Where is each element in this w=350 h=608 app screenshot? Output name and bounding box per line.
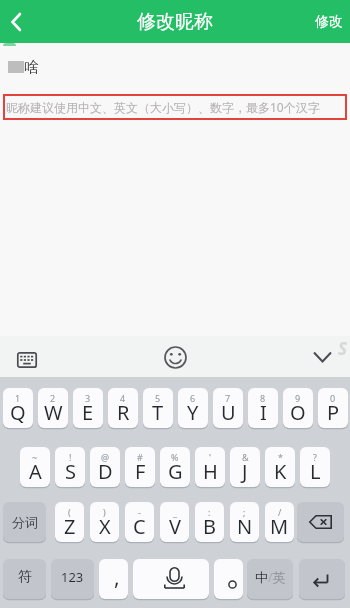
button[interactable]: !	[55, 447, 85, 487]
staticText: 7	[225, 392, 231, 404]
button[interactable]: )	[90, 502, 119, 542]
staticText: I	[260, 399, 267, 426]
staticText: E	[82, 399, 94, 426]
staticText: S	[65, 458, 76, 485]
staticText: Q	[10, 399, 26, 426]
staticText: ;	[243, 506, 246, 518]
staticText: *	[278, 451, 283, 463]
button[interactable]	[299, 559, 345, 599]
staticText: ~	[32, 451, 38, 463]
button[interactable]: ,	[99, 559, 128, 599]
staticText: F	[135, 458, 146, 485]
button[interactable]: %	[160, 447, 190, 487]
staticText: (	[68, 506, 71, 518]
button[interactable]	[160, 342, 190, 372]
button[interactable]: 中/英	[247, 559, 293, 599]
staticText: 啥	[24, 58, 39, 77]
button[interactable]: #	[125, 447, 155, 487]
staticText: /	[278, 506, 282, 518]
staticText: O	[290, 399, 306, 426]
staticText: 分词	[12, 514, 38, 530]
staticText: U	[221, 399, 236, 426]
staticText: 符	[18, 568, 32, 586]
staticText: '	[209, 451, 212, 463]
staticText: R	[117, 399, 130, 426]
staticText: )	[103, 506, 106, 518]
button[interactable]: 分词	[3, 502, 46, 542]
staticText: 3	[85, 392, 91, 404]
staticText: 123	[61, 568, 84, 586]
staticText: #	[137, 451, 143, 463]
button[interactable]: 7	[213, 388, 243, 428]
button[interactable]: 9	[283, 388, 313, 428]
button[interactable]: 啥	[8, 56, 350, 78]
button[interactable]	[307, 342, 337, 372]
button[interactable]: 8	[248, 388, 278, 428]
staticText: D	[98, 458, 113, 485]
staticText: Z	[64, 513, 76, 540]
button[interactable]: 1	[3, 388, 33, 428]
staticText: 0	[330, 392, 336, 404]
staticText: V	[169, 513, 181, 540]
button[interactable]: _	[160, 502, 189, 542]
staticText: N	[237, 513, 253, 540]
button[interactable]: (	[55, 502, 84, 542]
button[interactable]: -	[125, 502, 154, 542]
button[interactable]: 3	[73, 388, 103, 428]
staticText: 8	[260, 392, 266, 404]
button[interactable]	[12, 342, 42, 372]
staticText: 1	[15, 392, 21, 404]
button[interactable]	[133, 559, 209, 599]
button[interactable]: @	[90, 447, 120, 487]
staticText: ?	[313, 451, 317, 463]
staticText: :	[208, 506, 211, 518]
staticText: 6	[190, 392, 196, 404]
staticText: H	[203, 458, 218, 485]
staticText: G	[168, 458, 183, 485]
button[interactable]: &	[230, 447, 260, 487]
staticText: &	[242, 451, 249, 463]
staticText: 昵称建议使用中文、英文（大小写）、数字，最多10个汉字	[6, 99, 320, 115]
button[interactable]: 0	[318, 388, 348, 428]
button[interactable]: *	[265, 447, 295, 487]
button[interactable]: ?	[300, 447, 330, 487]
button[interactable]: ;	[230, 502, 259, 542]
staticText: Y	[187, 399, 199, 426]
button[interactable]: 6	[178, 388, 208, 428]
button[interactable]	[297, 502, 344, 542]
staticText: P	[327, 399, 340, 426]
button[interactable]: 123	[51, 559, 94, 599]
button[interactable]: 5	[143, 388, 173, 428]
staticText: L	[310, 458, 321, 485]
staticText: K	[274, 458, 287, 485]
staticText: -	[138, 506, 141, 518]
staticText: _	[173, 506, 177, 518]
staticText: @	[101, 451, 110, 463]
button[interactable]	[214, 559, 243, 599]
button[interactable]: ~	[20, 447, 50, 487]
button[interactable]: 修改	[315, 13, 343, 31]
staticText: A	[29, 458, 42, 485]
button[interactable]: :	[195, 502, 224, 542]
staticText: X	[99, 513, 111, 540]
staticText: !	[69, 451, 72, 463]
button[interactable]: '	[195, 447, 225, 487]
button[interactable]: 符	[3, 559, 46, 599]
staticText: B	[203, 513, 216, 540]
staticText: 修改	[315, 13, 343, 31]
button[interactable]: /	[265, 502, 294, 542]
staticText: M	[270, 513, 289, 540]
staticText: 2	[50, 392, 56, 404]
button[interactable]: 2	[38, 388, 68, 428]
staticText: W	[44, 399, 63, 426]
staticText: C	[133, 513, 146, 540]
staticText: 中/英	[255, 569, 286, 586]
button[interactable]	[0, 0, 32, 43]
staticText: ,	[114, 563, 120, 592]
staticText: J	[242, 458, 248, 485]
button[interactable]: 4	[108, 388, 138, 428]
staticText: 5	[155, 392, 161, 404]
staticText: T	[152, 399, 164, 426]
staticText: 4	[120, 392, 126, 404]
staticText: %	[171, 451, 179, 463]
